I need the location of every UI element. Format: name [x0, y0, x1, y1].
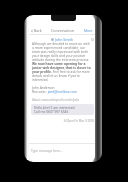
staticText: 4:25pm Fri Mar 9 2018 — [30, 119, 94, 123]
staticText: John Anderson — [32, 86, 55, 90]
button[interactable]: Back — [31, 28, 42, 33]
staticText: Conversation — [51, 28, 74, 33]
button[interactable]: John Smith — [51, 37, 73, 42]
staticText: Type message here... — [31, 149, 63, 153]
button[interactable]: Search conversation — [91, 38, 94, 41]
staticText: Recruiter: jand@mailbox.com — [32, 90, 77, 94]
button[interactable]: Hello John! I am interested. — [31, 104, 94, 115]
button[interactable]: Type message here... — [29, 143, 95, 160]
staticText: Hello John! I am interested. — [34, 106, 76, 110]
button[interactable]: More — [84, 28, 93, 33]
staticText: About: www.webspecif.com/ir/jobs — [32, 98, 80, 102]
staticText: Although we decided to move on with a mo… — [32, 42, 91, 82]
staticText: Call me 0607 997 6546 — [34, 110, 69, 113]
staticText: Back — [34, 28, 42, 33]
staticText: John Smith — [55, 37, 73, 42]
